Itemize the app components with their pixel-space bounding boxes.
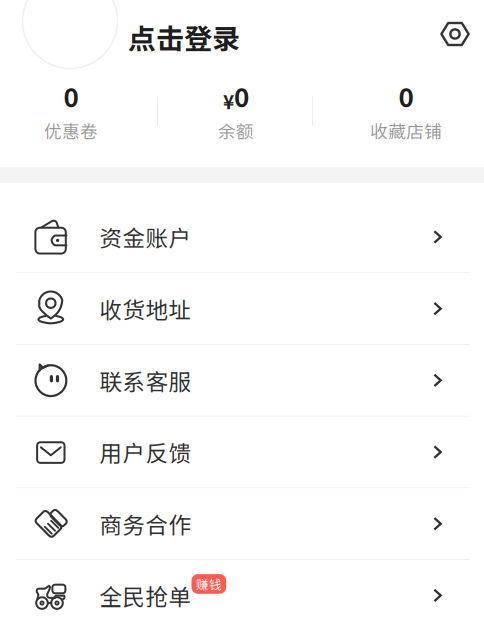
staticText: 0	[398, 77, 413, 115]
staticText: 赚钱	[196, 575, 222, 593]
button[interactable]: 点击登录	[128, 17, 240, 57]
button[interactable]: ¥	[161, 81, 311, 143]
button[interactable]: 收货地址	[0, 273, 484, 344]
staticText: 0	[63, 77, 78, 115]
staticText: 用户反馈	[99, 436, 191, 468]
staticText: ¥	[223, 87, 234, 115]
button[interactable]: 资金账户	[0, 202, 484, 272]
staticText: 优惠卷	[44, 118, 98, 143]
button[interactable]: 全民抢单	[0, 560, 484, 626]
staticText: 联系客服	[99, 364, 191, 397]
staticText: 余额	[218, 118, 254, 143]
button[interactable]: 商务合作	[0, 488, 484, 559]
button[interactable]: 0	[0, 81, 146, 143]
button[interactable]: 联系客服	[0, 345, 484, 416]
button[interactable]: 0	[331, 81, 481, 143]
staticText: 0	[234, 77, 249, 115]
staticText: 收藏店铺	[370, 118, 442, 143]
staticText: 点击登录	[128, 17, 240, 57]
button[interactable]: Settings	[440, 20, 470, 47]
staticText: 商务合作	[99, 507, 191, 540]
staticText: 资金账户	[99, 221, 191, 253]
staticText: 收货地址	[99, 292, 191, 325]
staticText: 全民抢单	[99, 579, 191, 612]
button[interactable]: 用户反馈	[0, 417, 484, 487]
